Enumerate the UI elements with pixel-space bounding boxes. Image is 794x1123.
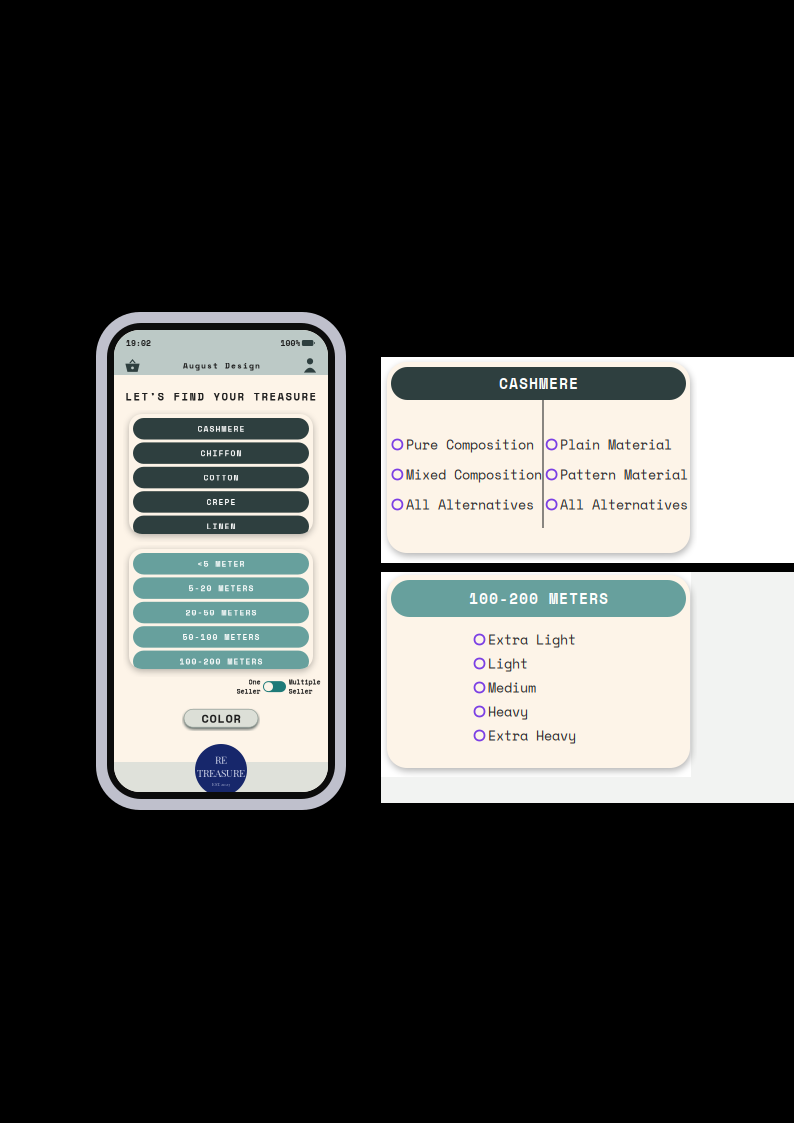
button[interactable]: Plain Material: [547, 436, 691, 453]
button[interactable]: C O L O R: [184, 709, 258, 727]
staticText: All Alternatives: [406, 495, 534, 514]
button[interactable]: C R E P E: [133, 491, 309, 513]
staticText: TREASURE: [197, 766, 245, 779]
staticText: L I N E N: [206, 520, 235, 532]
button[interactable]: Heavy: [474, 703, 624, 720]
button[interactable]: C A S H M E R E: [133, 418, 309, 439]
button[interactable]: C O T T O N: [133, 467, 309, 488]
button[interactable]: 5 - 2 0 M E T E R S: [133, 577, 309, 599]
staticText: Light: [488, 654, 528, 673]
staticText: C R E P E: [206, 496, 235, 508]
staticText: 1 0 0 - 2 0 0 M E T E R S: [469, 588, 608, 609]
staticText: C O L O R: [201, 709, 240, 727]
button[interactable]: Extra Light: [474, 631, 624, 648]
staticText: 2 0 - 5 0 M E T E R S: [185, 607, 256, 618]
staticText: All Alternatives: [560, 495, 688, 514]
button[interactable]: < 5 M E T E R: [133, 553, 309, 574]
staticText: Medium: [488, 678, 536, 697]
staticText: C O T T O N: [203, 472, 238, 483]
button[interactable]: 1 0 0 - 2 0 0 M E T E R S: [133, 651, 309, 672]
staticText: Mixed Composition: [406, 465, 542, 484]
staticText: EST. 2023: [212, 781, 230, 787]
staticText: One: [248, 677, 260, 687]
staticText: 100%: [280, 337, 300, 349]
button[interactable]: Light: [474, 655, 624, 672]
staticText: Seller: [236, 686, 260, 696]
button[interactable]: Mixed Composition: [392, 466, 542, 483]
button[interactable]: One or multiple sellers: [263, 681, 286, 692]
staticText: 5 - 2 0 M E T E R S: [188, 582, 253, 594]
staticText: Pure Composition: [406, 435, 534, 454]
staticText: Heavy: [488, 702, 528, 721]
staticText: L E T ’ S F I N D Y O U R T R E A S U R …: [125, 389, 316, 404]
staticText: C A S H M E R E: [197, 423, 244, 435]
button[interactable]: L I N E N: [133, 516, 309, 537]
button[interactable]: All Alternatives: [392, 496, 542, 513]
button[interactable]: All Alternatives: [547, 496, 691, 513]
staticText: Pattern Material: [560, 465, 688, 484]
button[interactable]: Account: [303, 358, 317, 373]
staticText: RE: [215, 753, 227, 766]
button[interactable]: 2 0 - 5 0 M E T E R S: [133, 602, 309, 623]
staticText: C H I F F O N: [200, 447, 241, 459]
staticText: C A S H M E R E: [499, 373, 578, 394]
staticText: Extra Light: [488, 630, 576, 649]
button[interactable]: Extra Heavy: [474, 727, 624, 744]
staticText: Plain Material: [560, 435, 672, 454]
button[interactable]: 5 0 - 1 0 0 M E T E R S: [133, 626, 309, 648]
staticText: Multiple: [288, 677, 320, 687]
staticText: 5 0 - 1 0 0 M E T E R S: [182, 631, 259, 643]
staticText: 19:02: [126, 337, 151, 349]
staticText: Extra Heavy: [488, 726, 576, 745]
button[interactable]: Medium: [474, 679, 624, 696]
staticText: A u g u s t D e s i g n: [183, 360, 260, 371]
staticText: Seller: [288, 686, 312, 696]
button[interactable]: C H I F F O N: [133, 442, 309, 464]
button[interactable]: Pattern Material: [547, 466, 691, 483]
staticText: 1 0 0 - 2 0 0 M E T E R S: [179, 655, 262, 667]
button[interactable]: Pure Composition: [392, 436, 542, 453]
staticText: < 5 M E T E R: [197, 558, 244, 570]
button[interactable]: Basket: [125, 358, 140, 372]
